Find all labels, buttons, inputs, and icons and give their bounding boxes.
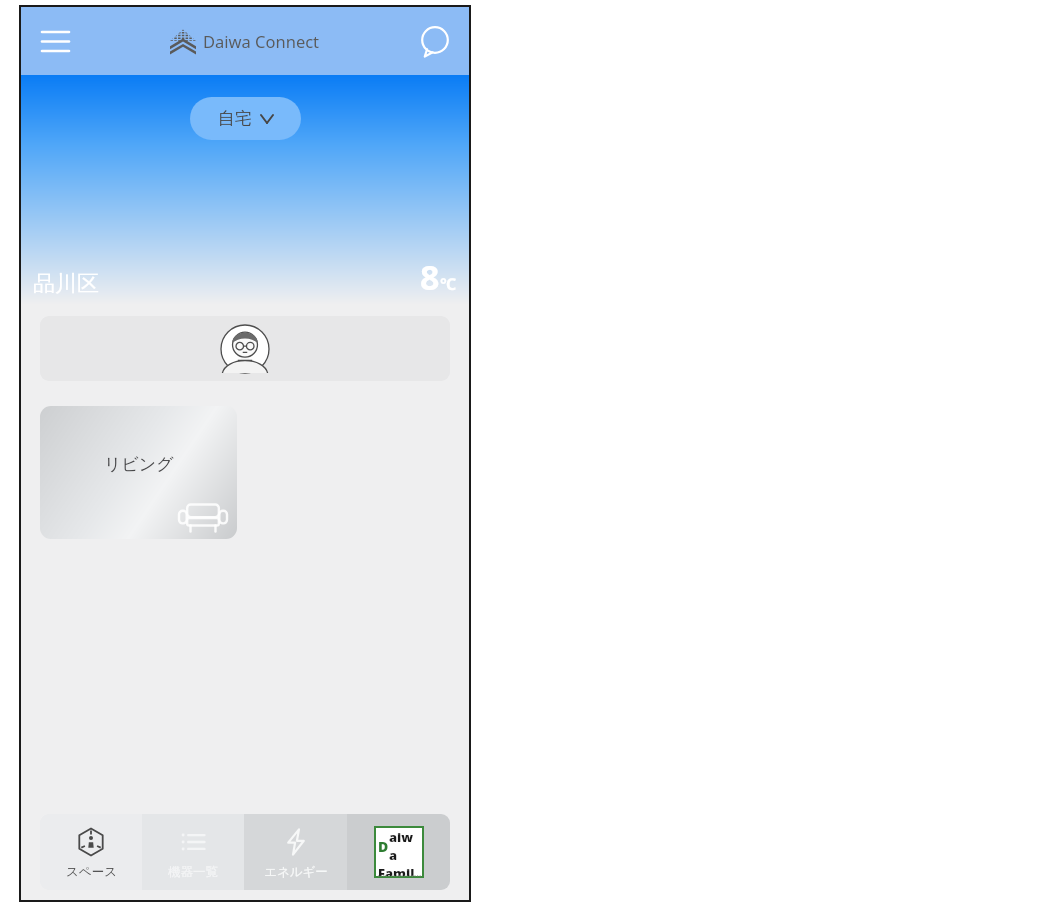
staticText: 自宅 — [218, 108, 252, 129]
staticText: エネルギー — [264, 864, 328, 880]
staticText: 8 — [420, 254, 440, 300]
button[interactable]: エネルギー — [244, 814, 347, 890]
staticText: D — [378, 837, 389, 856]
button[interactable] — [40, 316, 450, 381]
staticText: Daiwa Connect — [203, 30, 320, 52]
staticText: ℃ — [440, 273, 457, 295]
button[interactable]: 機器一覧 — [142, 814, 244, 890]
staticText: aiwa — [389, 828, 420, 864]
staticText: リビング — [104, 454, 174, 475]
button[interactable]: スペース — [40, 814, 142, 890]
button[interactable]: Menu — [33, 19, 77, 63]
staticText: 品川区 — [33, 270, 99, 298]
button[interactable]: 自宅 — [190, 97, 301, 140]
button[interactable]: Chat — [413, 19, 457, 63]
staticText: 機器一覧 — [168, 864, 218, 880]
button[interactable]: Daiwa Family Club — [347, 814, 450, 890]
staticText: スペース — [66, 864, 117, 880]
staticText: Family — [378, 864, 420, 876]
button[interactable]: リビング — [40, 406, 237, 539]
